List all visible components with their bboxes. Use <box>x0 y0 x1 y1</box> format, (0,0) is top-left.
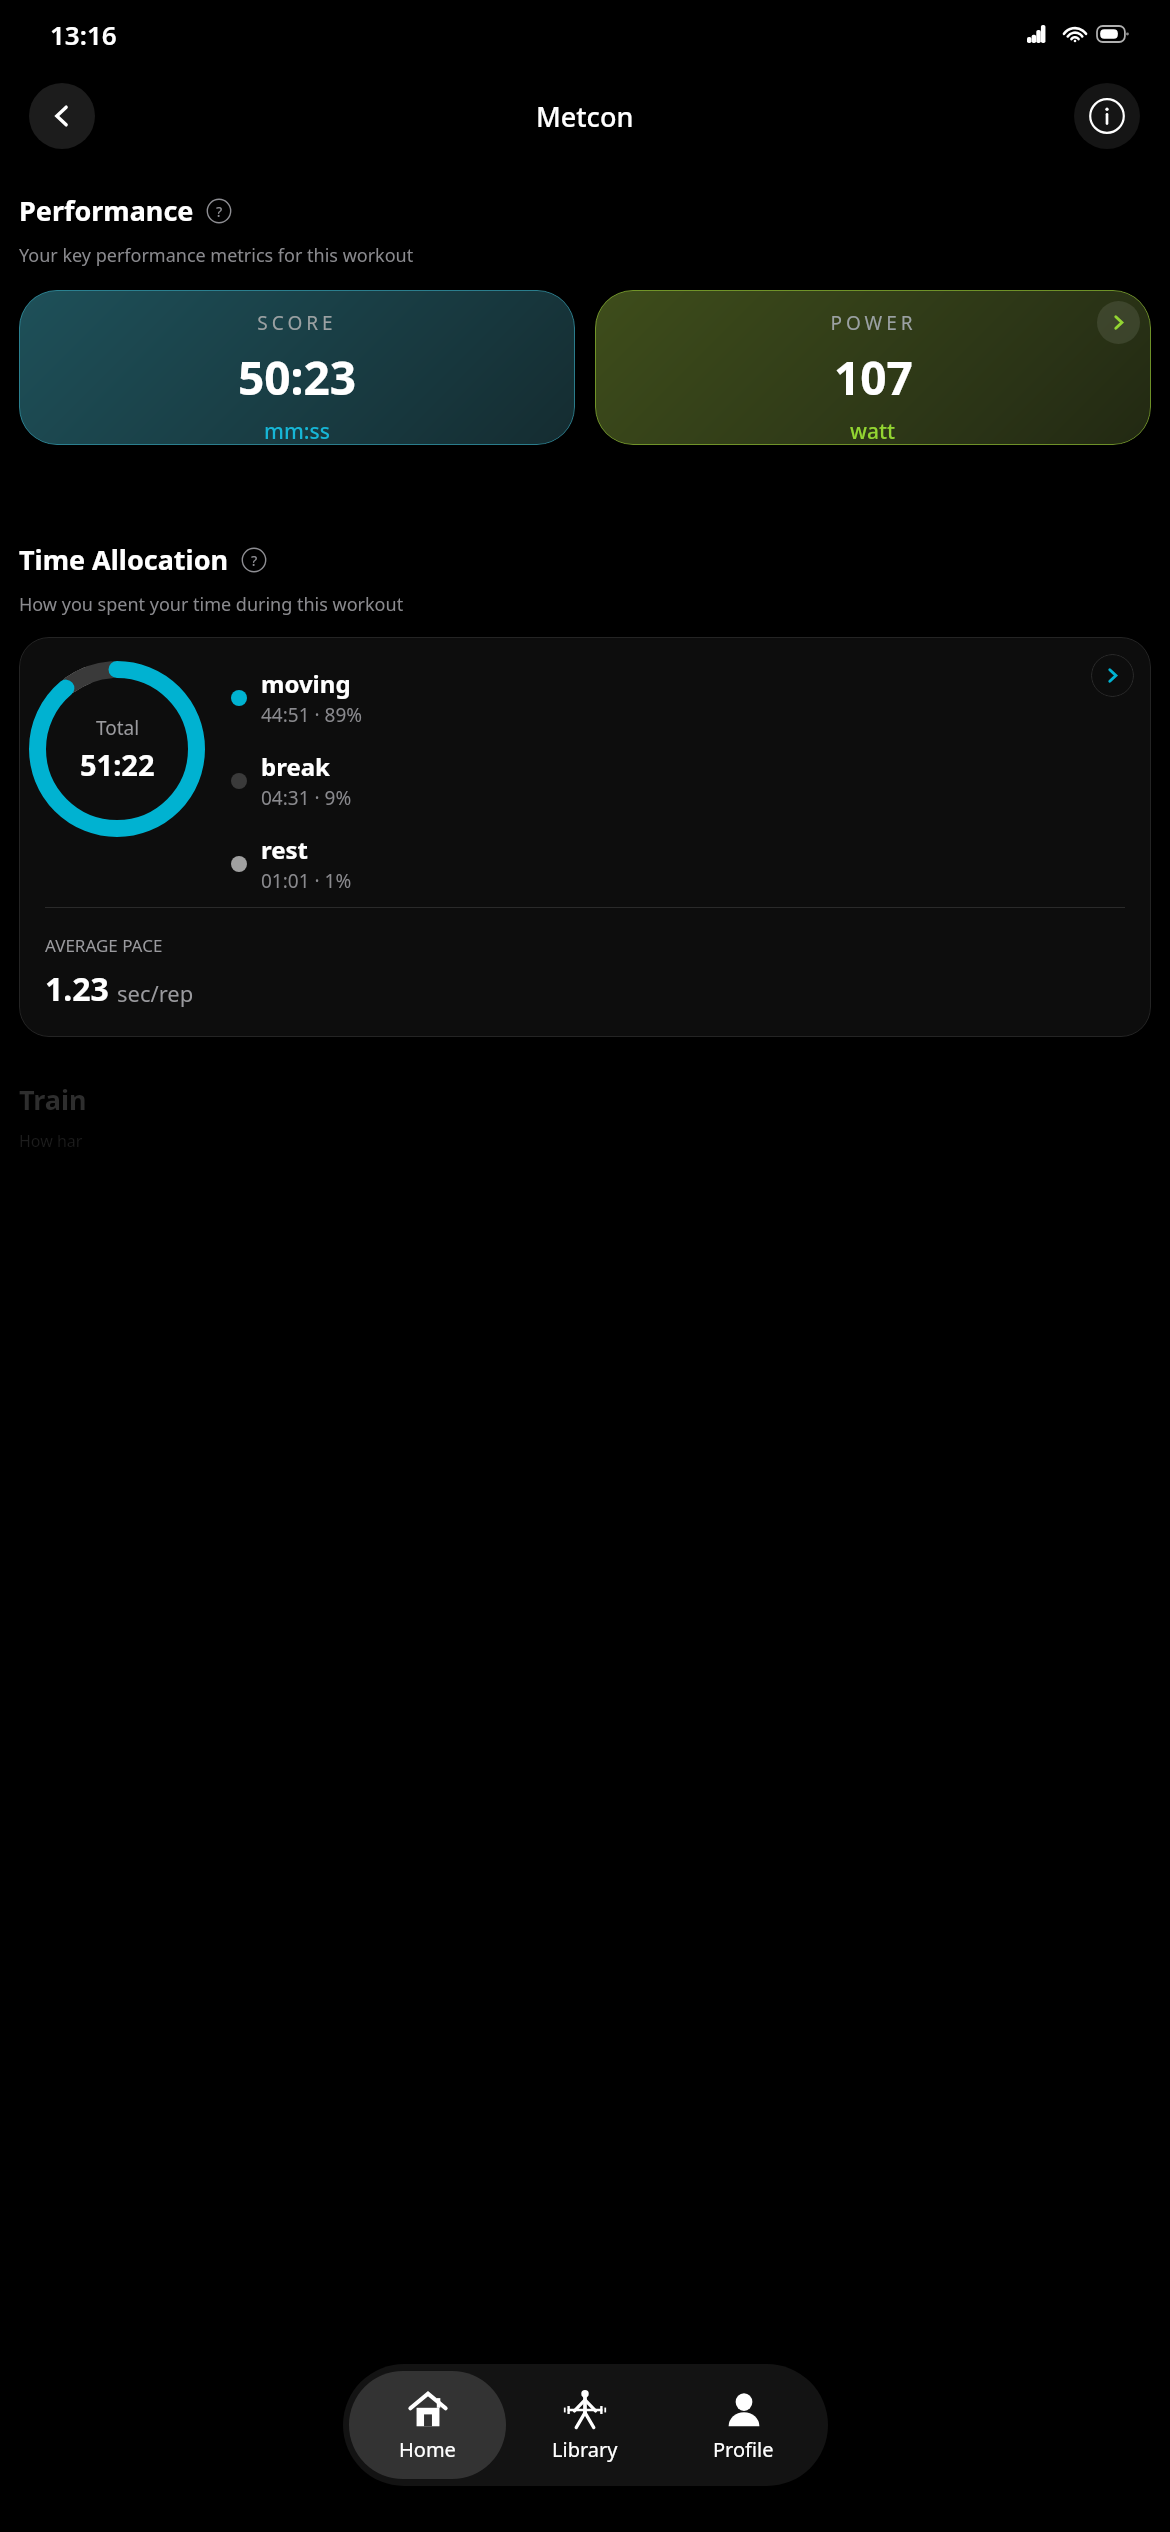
staticText: 04:31 · 9% <box>261 785 352 811</box>
button[interactable]: Help <box>206 198 232 224</box>
staticText: AVERAGE PACE <box>45 934 163 957</box>
staticText: Your key performance metrics for this wo… <box>19 243 414 268</box>
staticText: mm:ss <box>264 417 330 445</box>
button[interactable]: More power details <box>1097 301 1140 344</box>
staticText: POWER <box>830 310 917 336</box>
button[interactable]: Back <box>29 83 95 149</box>
staticText: SCORE <box>257 310 337 336</box>
button[interactable]: Help <box>241 547 267 573</box>
button[interactable]: POWER <box>595 290 1151 445</box>
staticText: Profile <box>713 2436 774 2463</box>
staticText: ? <box>251 551 258 570</box>
staticText: Library <box>552 2436 618 2463</box>
button[interactable]: More time details <box>19 637 1151 1037</box>
staticText: Time Allocation <box>19 541 229 578</box>
button[interactable]: SCORE <box>19 290 575 445</box>
staticText: moving <box>261 667 351 700</box>
staticText: 107 <box>834 346 913 409</box>
button[interactable]: Info <box>1074 83 1140 149</box>
staticText: rest <box>261 833 309 866</box>
staticText: Total <box>96 715 140 741</box>
button[interactable]: Library <box>506 2371 664 2479</box>
button[interactable]: Home <box>349 2371 506 2479</box>
staticText: 01:01 · 1% <box>261 868 352 894</box>
button[interactable]: Profile <box>664 2371 822 2479</box>
staticText: sec/rep <box>117 978 194 1008</box>
staticText: 44:51 · 89% <box>261 702 363 728</box>
staticText: How har <box>19 1130 83 1152</box>
staticText: Train <box>19 1081 87 1118</box>
staticText: Home <box>399 2436 456 2463</box>
staticText: ? <box>216 202 223 221</box>
staticText: break <box>261 750 330 783</box>
staticText: 1.23 <box>45 967 109 1011</box>
button[interactable]: More time details <box>1091 654 1134 697</box>
staticText: Metcon <box>536 98 634 135</box>
staticText: Performance <box>19 192 194 229</box>
staticText: 51:22 <box>80 745 155 784</box>
staticText: watt <box>850 417 896 445</box>
staticText: 50:23 <box>238 346 357 409</box>
staticText: 13:16 <box>50 17 117 52</box>
staticText: How you spent your time during this work… <box>19 592 404 617</box>
